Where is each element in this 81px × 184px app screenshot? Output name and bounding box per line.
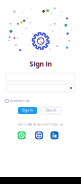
button[interactable]: Sign in with WhatsApp [18, 131, 26, 139]
staticText: Don't have an account? Sign Up [17, 123, 63, 126]
staticText: Sign in [29, 60, 51, 68]
button[interactable]: Sign In [18, 107, 37, 114]
staticText: Sign In [22, 109, 33, 112]
staticText: Remember Me [10, 99, 30, 103]
button[interactable]: Remember Me [5, 98, 30, 103]
button[interactable]: Sign in with Facebook [35, 131, 43, 139]
staticText: Cancel [45, 109, 56, 112]
button[interactable]: Sign in with LinkedIn [50, 131, 58, 139]
button[interactable]: Cancel [41, 107, 61, 114]
